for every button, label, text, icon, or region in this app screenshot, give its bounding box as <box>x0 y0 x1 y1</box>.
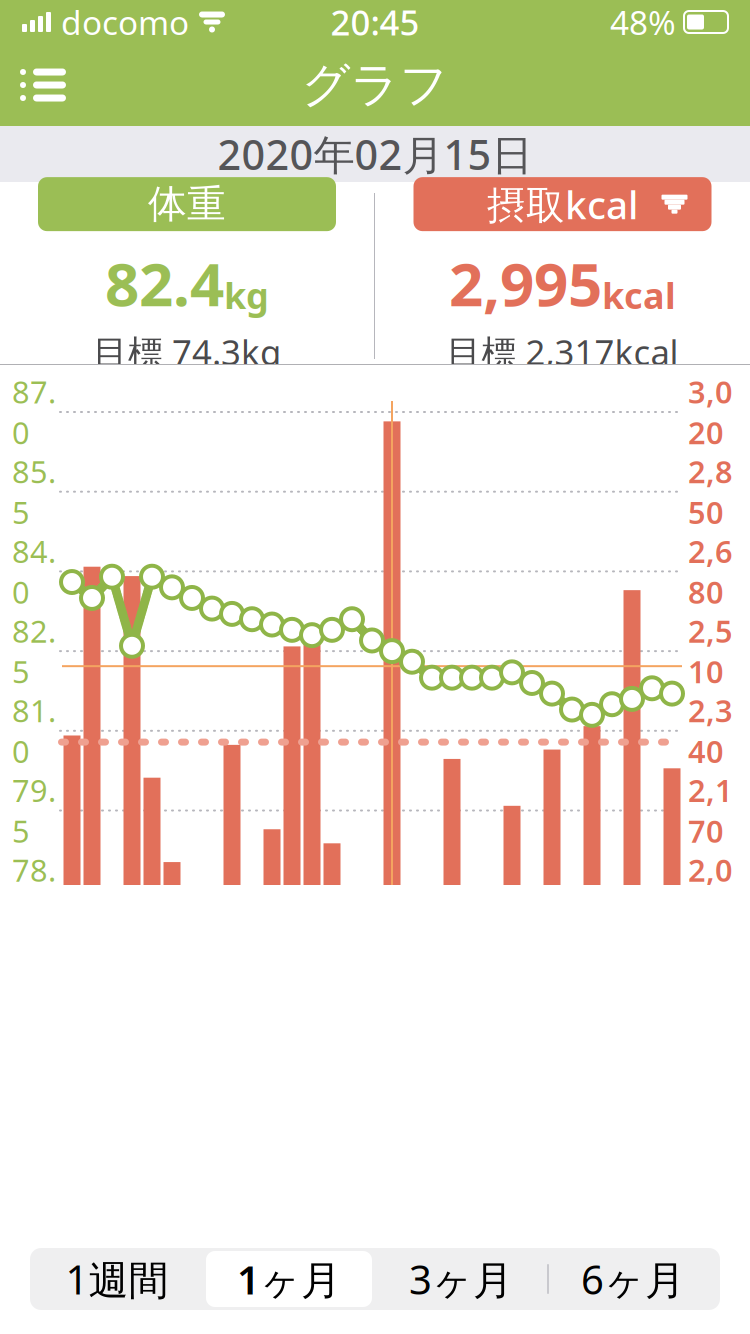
staticText: 2,000 <box>688 849 733 931</box>
staticText: 2/19 <box>399 1213 464 1253</box>
staticText: 2/27 <box>559 1213 624 1253</box>
staticText: 目標 74.3kg <box>93 329 281 375</box>
staticText: 2,510 <box>688 610 733 692</box>
button[interactable]: 摂取kcal <box>413 177 711 231</box>
staticText: 3,020 <box>688 371 733 453</box>
staticText: 2/07 <box>159 1213 224 1253</box>
staticText: 82.4 <box>105 243 224 323</box>
staticText: 2,340 <box>688 690 733 771</box>
staticText: 79.5 <box>12 770 56 851</box>
staticText: 摂取kcal <box>487 178 638 230</box>
staticText: kcal <box>602 271 676 319</box>
staticText: 2,680 <box>688 531 733 612</box>
staticText: 1週間 <box>65 1252 168 1305</box>
staticText: 84.0 <box>12 531 56 612</box>
staticText: 1ヶ月 <box>237 1252 341 1305</box>
staticText: 87.0 <box>12 371 56 453</box>
staticText: 2/03 <box>79 1213 144 1253</box>
staticText: 目標 2,317kcal <box>446 329 678 375</box>
staticText: docomo <box>61 0 189 44</box>
staticText: kg <box>224 271 269 319</box>
button[interactable]: 1週間 <box>31 1248 203 1310</box>
staticText: 78.0 <box>12 849 56 931</box>
staticText: 6ヶ月 <box>581 1252 685 1305</box>
staticText: 82.5 <box>12 610 56 692</box>
button[interactable]: 1ヶ月 <box>203 1248 375 1310</box>
staticText: 2/15 <box>319 1213 384 1253</box>
button[interactable]: 6ヶ月 <box>547 1248 719 1310</box>
button[interactable]: Menu <box>0 54 86 115</box>
staticText: 81.0 <box>12 690 56 771</box>
staticText: グラフ <box>301 55 448 114</box>
staticText: 48% <box>610 0 676 44</box>
staticText: 2020年02月15日 <box>217 127 532 181</box>
staticText: 2,170 <box>688 770 733 851</box>
staticText: 3ヶ月 <box>409 1252 513 1305</box>
staticText: 2,995 <box>449 243 602 323</box>
button[interactable]: 体重 <box>38 177 336 231</box>
staticText: 20:45 <box>330 0 419 45</box>
staticText: 2,850 <box>688 451 733 532</box>
button[interactable]: 3ヶ月 <box>375 1248 547 1310</box>
staticText: 85.5 <box>12 451 56 532</box>
staticText: 2/23 <box>479 1213 544 1253</box>
staticText: 体重 <box>148 180 226 228</box>
staticText: 2/11 <box>239 1213 304 1253</box>
